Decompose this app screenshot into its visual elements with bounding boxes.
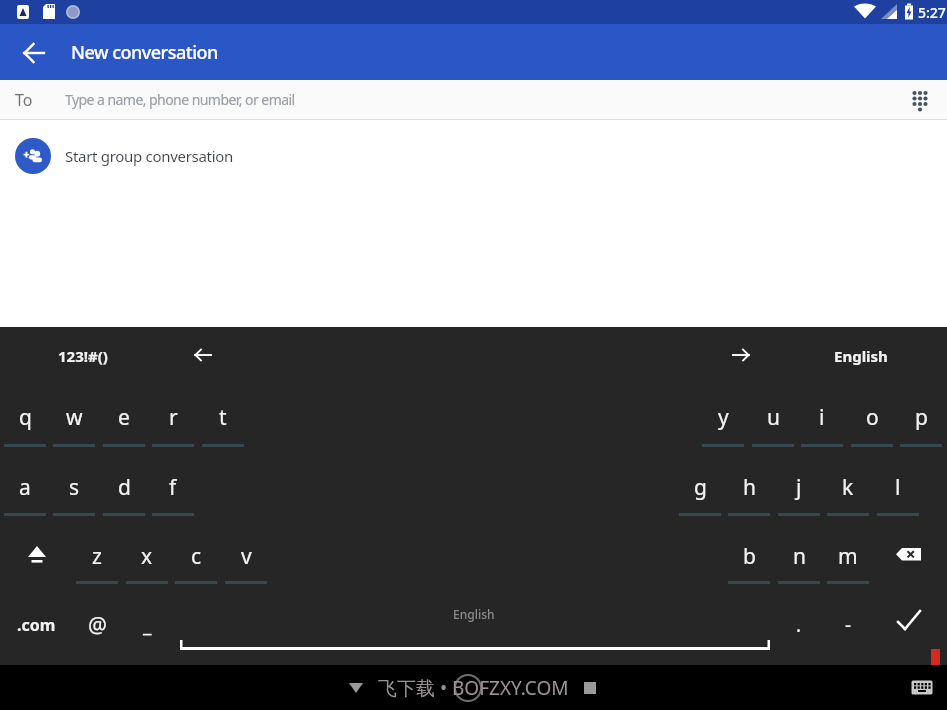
staticText: j xyxy=(796,473,802,502)
staticText: o xyxy=(866,403,879,432)
staticText: r xyxy=(169,403,178,432)
staticText: l xyxy=(895,473,901,502)
button[interactable]: z xyxy=(72,528,122,584)
button[interactable]: j xyxy=(774,459,824,515)
staticText: w xyxy=(66,403,83,432)
staticText: 123!#() xyxy=(58,346,108,366)
button[interactable]: p xyxy=(896,389,946,445)
button[interactable]: g xyxy=(675,459,725,515)
staticText: q xyxy=(19,403,32,432)
button[interactable]: k xyxy=(823,459,873,515)
staticText: New conversation xyxy=(71,40,218,65)
staticText: n xyxy=(793,542,806,571)
staticText: 5:27 xyxy=(918,3,946,21)
staticText: g xyxy=(694,473,707,502)
staticText: . xyxy=(796,612,802,638)
button[interactable]: q xyxy=(0,389,50,445)
staticText: .com xyxy=(17,614,56,636)
button[interactable]: .com xyxy=(11,597,61,653)
button[interactable]: u xyxy=(748,389,798,445)
staticText: f xyxy=(169,473,177,502)
button[interactable]: l xyxy=(873,459,923,515)
staticText: p xyxy=(915,403,928,432)
staticText: Type a name, phone number, or email xyxy=(65,90,295,109)
staticText: Start group conversation xyxy=(65,146,234,166)
button[interactable]: Start group conversation xyxy=(0,132,947,180)
button[interactable]: h xyxy=(724,459,774,515)
button[interactable]: b xyxy=(724,528,774,584)
button[interactable]: x xyxy=(122,528,172,584)
button[interactable] xyxy=(14,33,54,73)
button[interactable] xyxy=(891,603,927,637)
staticText: h xyxy=(743,473,756,502)
button[interactable]: English xyxy=(821,341,901,371)
button[interactable]: . xyxy=(774,597,824,653)
button[interactable] xyxy=(891,538,927,570)
staticText: v xyxy=(241,542,252,571)
button[interactable]: n xyxy=(774,528,824,584)
button[interactable]: c xyxy=(171,528,221,584)
staticText: u xyxy=(767,403,780,432)
staticText: k xyxy=(842,473,854,502)
staticText: English xyxy=(834,346,888,366)
button[interactable]: - xyxy=(823,597,873,653)
staticText: s xyxy=(69,473,80,502)
button[interactable]: 123!#() xyxy=(43,341,123,371)
staticText: t xyxy=(219,403,227,432)
button[interactable]: @ xyxy=(72,597,122,653)
button[interactable] xyxy=(908,677,936,697)
button[interactable]: e xyxy=(99,389,149,445)
staticText: m xyxy=(838,542,858,571)
button[interactable]: f xyxy=(148,459,198,515)
button[interactable] xyxy=(905,85,935,115)
staticText: 飞下载 • BOFZXY.COM xyxy=(378,675,569,701)
button[interactable] xyxy=(180,597,770,663)
button[interactable]: r xyxy=(148,389,198,445)
button[interactable]: d xyxy=(99,459,149,515)
staticText: e xyxy=(118,403,130,432)
staticText: z xyxy=(92,542,102,571)
button[interactable]: t xyxy=(198,389,248,445)
staticText: @ xyxy=(88,611,107,640)
button[interactable]: a xyxy=(0,459,50,515)
staticText: b xyxy=(743,542,756,571)
button[interactable] xyxy=(727,341,755,369)
button[interactable]: m xyxy=(823,528,873,584)
staticText: _ xyxy=(143,612,152,638)
staticText: English xyxy=(453,606,495,622)
button[interactable]: s xyxy=(49,459,99,515)
button[interactable]: v xyxy=(221,528,271,584)
button[interactable] xyxy=(21,540,53,572)
staticText: x xyxy=(141,542,153,571)
staticText: a xyxy=(19,473,31,502)
button[interactable]: _ xyxy=(122,597,172,653)
button[interactable]: To xyxy=(0,80,947,120)
button[interactable] xyxy=(189,341,217,369)
staticText: y xyxy=(718,403,729,432)
staticText: c xyxy=(191,542,202,571)
button[interactable]: i xyxy=(797,389,847,445)
button[interactable]: y xyxy=(698,389,748,445)
staticText: - xyxy=(845,612,852,638)
staticText: i xyxy=(819,403,825,432)
staticText: To xyxy=(15,89,33,111)
button[interactable]: o xyxy=(847,389,897,445)
button[interactable]: w xyxy=(49,389,99,445)
staticText: d xyxy=(118,473,131,502)
